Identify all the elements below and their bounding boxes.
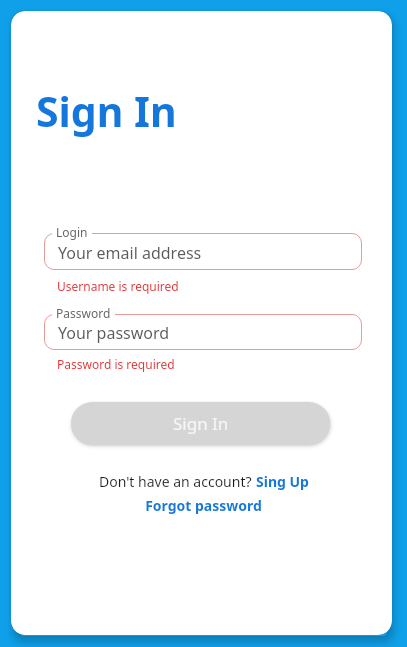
staticText: Username is required (57, 278, 179, 294)
staticText: Don't have an account? (99, 472, 256, 491)
staticText: Your email address (58, 242, 202, 264)
button[interactable]: Sign In (71, 402, 330, 445)
staticText: Password (56, 305, 111, 321)
staticText: Sign In (36, 83, 177, 139)
staticText: Password is required (57, 356, 175, 372)
staticText: Sign In (173, 412, 229, 435)
staticText: Login (56, 224, 88, 240)
button[interactable]: Forgot password (145, 496, 262, 515)
button[interactable]: Sing Up (256, 472, 309, 491)
staticText: Your password (58, 322, 170, 344)
